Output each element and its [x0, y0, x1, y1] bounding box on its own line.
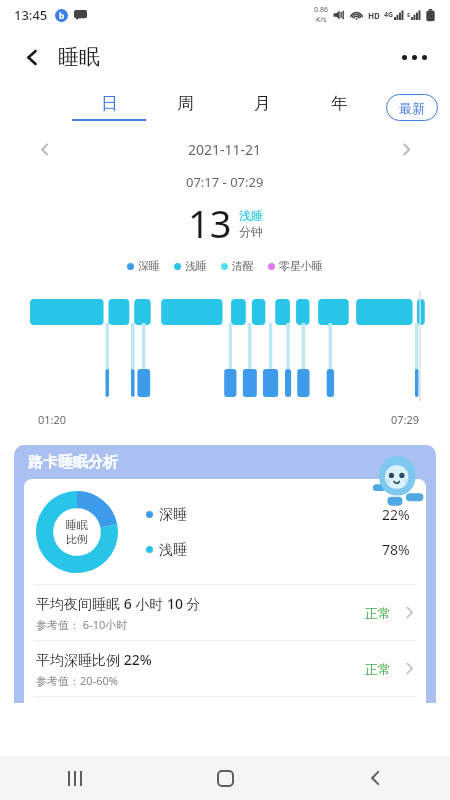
button[interactable]: Home — [150, 756, 300, 800]
staticText: 零星小睡 — [279, 259, 323, 273]
button[interactable]: Next day — [390, 133, 422, 165]
staticText: 分钟 — [239, 224, 263, 239]
staticText: 22% — [382, 505, 410, 524]
button[interactable]: 平均深睡比例 22% — [24, 641, 426, 696]
button[interactable]: 平均夜间睡眠 6 小时 10 分 — [24, 585, 426, 640]
staticText: 正常 — [365, 661, 391, 677]
staticText: 清醒 — [232, 259, 254, 273]
button[interactable]: More options — [392, 39, 436, 75]
staticText: 浅睡 — [239, 208, 263, 223]
staticText: 07:29 — [391, 412, 420, 427]
staticText: K/s — [316, 15, 327, 25]
staticText: 睡眠 — [66, 518, 88, 532]
staticText: HD — [368, 10, 380, 21]
staticText: 路卡睡眠分析 — [28, 453, 118, 472]
staticText: 年 — [331, 93, 348, 114]
staticText: 月 — [254, 93, 271, 114]
staticText: 13 — [188, 197, 232, 249]
button[interactable]: 月 — [224, 83, 301, 131]
button[interactable]: Previous day — [28, 133, 60, 165]
staticText: 2021-11-21 — [188, 140, 262, 159]
staticText: 浅睡 — [159, 541, 187, 559]
staticText: 78% — [382, 540, 410, 559]
staticText: 13:45 — [14, 6, 48, 24]
staticText: 睡眠 — [58, 44, 100, 70]
staticText: 深睡 — [138, 259, 160, 273]
staticText: 平均夜间睡眠 6 小时 10 分 — [36, 594, 201, 613]
button[interactable]: Back — [300, 756, 450, 800]
staticText: 最新 — [399, 100, 425, 116]
staticText: 比例 — [66, 532, 88, 546]
staticText: 0.86 — [314, 5, 328, 15]
staticText: 07:17 - 07:29 — [186, 173, 264, 191]
button[interactable]: 周 — [147, 83, 224, 131]
staticText: E — [407, 11, 411, 19]
staticText: 周 — [177, 93, 194, 114]
staticText: 01:20 — [38, 412, 67, 427]
button[interactable]: 年 — [301, 83, 378, 131]
staticText: 参考值：20-60% — [36, 673, 118, 688]
staticText: 平均深睡比例 22% — [36, 650, 152, 669]
staticText: 参考值： 6-10小时 — [36, 617, 128, 632]
staticText: 深睡 — [159, 506, 187, 524]
staticText: 正常 — [365, 605, 391, 621]
button[interactable]: 最新 — [386, 94, 438, 121]
button[interactable]: 日 — [70, 83, 147, 131]
button[interactable]: Recents — [0, 756, 150, 800]
staticText: 浅睡 — [185, 259, 207, 273]
staticText: b — [59, 10, 65, 21]
button[interactable]: Back — [14, 39, 50, 75]
staticText: 日 — [101, 93, 118, 114]
staticText: 4G — [384, 10, 394, 20]
